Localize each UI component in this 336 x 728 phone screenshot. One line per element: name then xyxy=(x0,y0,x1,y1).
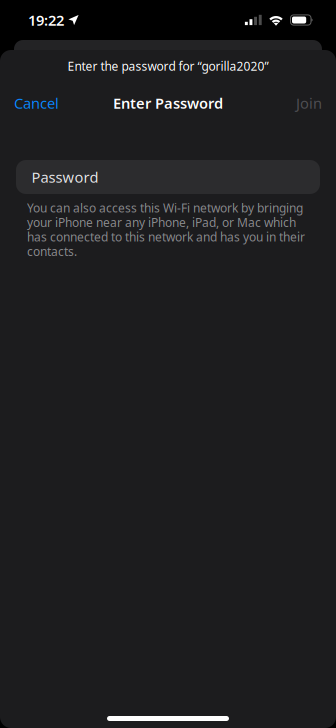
staticText: You can also access this Wi-Fi network b… xyxy=(27,200,305,259)
button[interactable]: Cancel xyxy=(0,84,73,122)
button[interactable]: Join xyxy=(282,84,336,122)
staticText: Enter the password for “gorilla2020” xyxy=(67,58,268,74)
button[interactable]: Password xyxy=(16,160,320,194)
staticText: Join xyxy=(296,93,322,113)
staticText: Password xyxy=(31,167,98,187)
staticText: 19:22 xyxy=(28,10,64,30)
staticText: Cancel xyxy=(14,93,59,113)
staticText: Enter Password xyxy=(113,93,223,113)
